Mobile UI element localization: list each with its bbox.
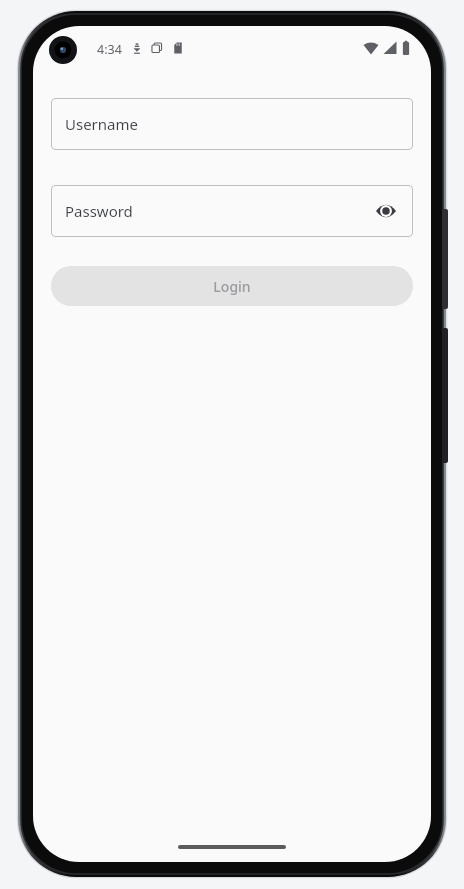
staticText: Login — [213, 277, 251, 296]
button[interactable]: Username — [51, 98, 413, 150]
staticText: Password — [65, 201, 133, 221]
staticText: Username — [65, 114, 138, 134]
button[interactable]: Show password — [369, 194, 403, 228]
button[interactable]: Password — [51, 185, 413, 237]
button[interactable]: Login — [51, 266, 413, 306]
staticText: 4:34 — [97, 41, 122, 58]
